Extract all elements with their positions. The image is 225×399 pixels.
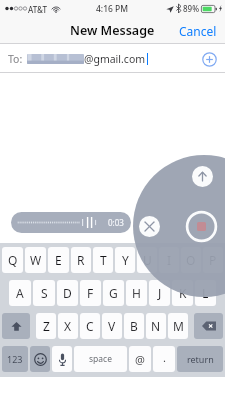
- staticText: X: [64, 318, 72, 334]
- button[interactable]: 0:03: [11, 212, 131, 233]
- button[interactable]: Y: [115, 247, 135, 273]
- staticText: D: [63, 285, 72, 301]
- button[interactable]: G: [103, 280, 124, 306]
- staticText: Cancel: [179, 23, 217, 39]
- staticText: F: [87, 285, 94, 301]
- staticText: S: [41, 285, 48, 301]
- button[interactable]: E: [48, 247, 69, 273]
- staticText: H: [132, 285, 141, 301]
- staticText: New Message: [70, 22, 155, 39]
- staticText: Z: [43, 318, 50, 334]
- button[interactable]: S: [33, 280, 55, 306]
- staticText: 0:03: [108, 217, 124, 228]
- button[interactable]: Backspace: [194, 313, 223, 339]
- staticText: W: [30, 252, 42, 268]
- staticText: K: [179, 285, 187, 301]
- button[interactable]: A: [9, 280, 31, 306]
- button[interactable]: C: [80, 313, 100, 339]
- staticText: C: [86, 318, 94, 334]
- staticText: Q: [8, 252, 18, 268]
- staticText: V: [108, 318, 116, 334]
- button[interactable]: X: [58, 313, 78, 339]
- button[interactable]: B: [124, 313, 144, 339]
- button[interactable]: Shift: [2, 313, 30, 339]
- staticText: L: [202, 285, 209, 301]
- button[interactable]: T: [93, 247, 113, 273]
- button[interactable]: J: [149, 280, 170, 306]
- button[interactable]: space: [74, 346, 127, 372]
- button[interactable]: R: [71, 247, 91, 273]
- button[interactable]: F: [80, 280, 101, 306]
- button[interactable]: K: [172, 280, 193, 306]
- staticText: M: [173, 318, 184, 334]
- button[interactable]: Emoji keyboard: [30, 346, 50, 372]
- staticText: AT&T: [28, 4, 47, 15]
- staticText: O: [186, 252, 196, 268]
- staticText: T: [100, 252, 107, 268]
- button[interactable]: Send audio message: [192, 166, 213, 187]
- button[interactable]: Add recipient: [198, 48, 220, 70]
- staticText: Y: [122, 252, 129, 268]
- button[interactable]: V: [102, 313, 122, 339]
- staticText: N: [151, 318, 161, 334]
- staticText: A: [16, 285, 24, 301]
- staticText: U: [143, 252, 152, 268]
- staticText: G: [109, 285, 118, 301]
- staticText: B: [130, 318, 138, 334]
- button[interactable]: Dictation: [52, 346, 72, 372]
- staticText: @gmail.com: [84, 52, 146, 66]
- staticText: .: [163, 350, 166, 365]
- button[interactable]: return: [177, 346, 223, 372]
- staticText: R: [77, 252, 85, 268]
- button[interactable]: M: [168, 313, 188, 339]
- button[interactable]: D: [57, 280, 78, 306]
- button[interactable]: L: [195, 280, 216, 306]
- button[interactable]: Stop recording: [186, 211, 217, 242]
- staticText: 4:16 PM: [96, 3, 129, 15]
- button[interactable]: N: [146, 313, 166, 339]
- button[interactable]: Cancel: [171, 18, 225, 44]
- staticText: return: [187, 353, 214, 365]
- button[interactable]: Z: [36, 313, 56, 339]
- staticText: 123: [7, 353, 23, 365]
- staticText: P: [209, 252, 217, 268]
- button[interactable]: Q: [2, 247, 23, 273]
- staticText: J: [158, 285, 162, 301]
- button[interactable]: U: [137, 247, 157, 273]
- staticText: space: [89, 353, 112, 365]
- button[interactable]: 123: [2, 346, 28, 372]
- staticText: E: [55, 252, 62, 268]
- button[interactable]: .: [153, 346, 175, 372]
- staticText: To:: [8, 52, 23, 66]
- button[interactable]: @: [129, 346, 151, 372]
- button[interactable]: H: [126, 280, 147, 306]
- staticText: 89%: [183, 3, 199, 14]
- staticText: @: [135, 352, 145, 367]
- button[interactable]: W: [25, 247, 46, 273]
- staticText: I: [167, 252, 172, 268]
- button[interactable]: Cancel recording: [139, 216, 160, 237]
